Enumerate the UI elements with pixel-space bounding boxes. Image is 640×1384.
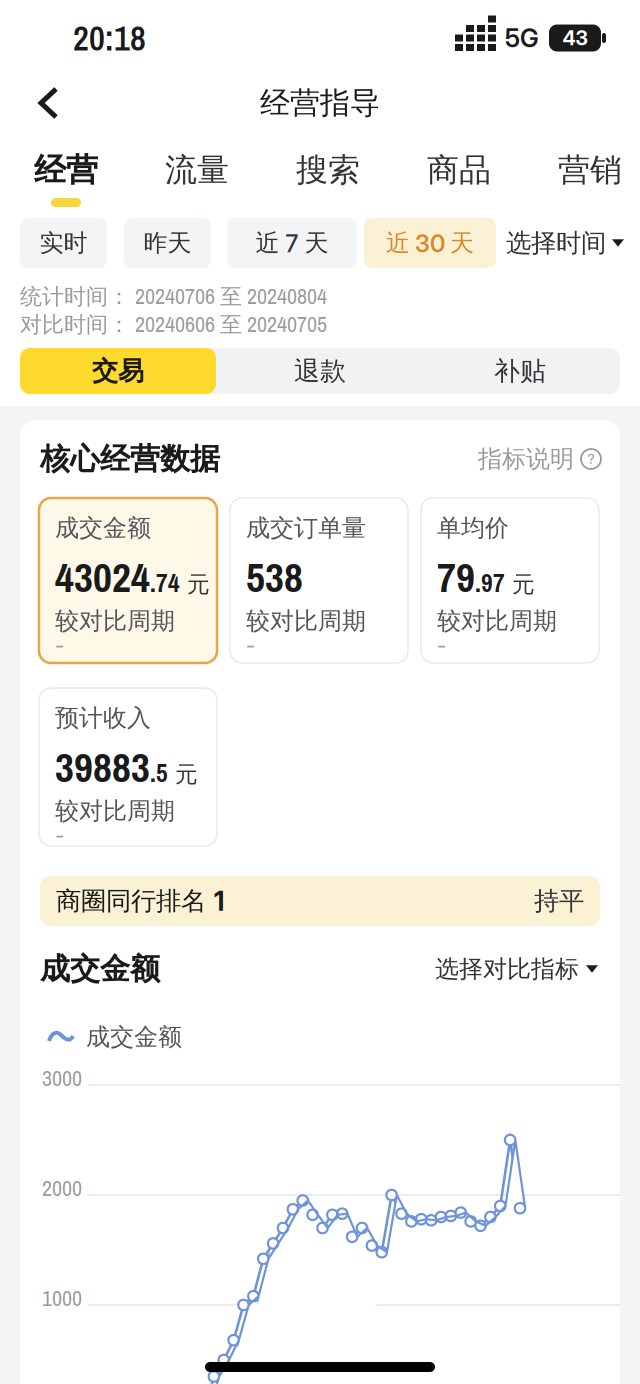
staticText: 79	[437, 549, 475, 605]
button[interactable]: 近 7 天	[227, 218, 357, 268]
staticText: 元	[505, 570, 535, 599]
staticText: -	[55, 632, 64, 658]
staticText: 5G	[505, 23, 539, 53]
staticText: .5	[150, 756, 168, 790]
staticText: 补贴	[494, 355, 546, 387]
staticText: 3000	[42, 1063, 82, 1093]
staticText: 搜索	[296, 150, 360, 190]
button[interactable]: 昨天	[124, 218, 211, 268]
staticText: 成交订单量	[246, 513, 366, 543]
staticText: 单均价	[437, 513, 509, 543]
button[interactable]: 成交金额	[40, 498, 218, 663]
button[interactable]: 近 30 天	[364, 218, 496, 268]
button[interactable]: 成交订单量	[231, 498, 409, 663]
button[interactable]: 商圈同行排名	[40, 876, 600, 926]
staticText: 营销	[558, 150, 622, 190]
staticText: 较对比周期	[437, 606, 557, 636]
staticText: 元	[168, 760, 198, 789]
staticText: 43	[562, 26, 587, 50]
staticText: .74	[150, 566, 180, 600]
staticText: -	[246, 632, 255, 658]
staticText: 538	[246, 549, 303, 605]
button[interactable]: 退款	[220, 348, 420, 394]
button[interactable]: 选择对比指标	[435, 954, 598, 984]
staticText: 经营指导	[260, 84, 380, 122]
staticText: 商品	[427, 150, 491, 190]
staticText: 选择时间	[506, 227, 606, 259]
staticText: 近 30 天	[386, 228, 474, 258]
button[interactable]: 经营	[16, 144, 116, 196]
staticText: 经营	[34, 150, 98, 190]
staticText: 昨天	[143, 228, 191, 258]
staticText: 商圈同行排名	[56, 885, 214, 917]
button[interactable]: 指标说明	[478, 444, 602, 474]
staticText: ?	[587, 451, 594, 467]
staticText: 退款	[294, 355, 346, 387]
staticText: 20:18	[73, 15, 146, 61]
staticText: 成交金额	[55, 513, 151, 543]
staticText: 统计时间： 20240706 至 20240804	[20, 281, 327, 311]
staticText: 选择对比指标	[435, 954, 579, 984]
staticText: 持平	[534, 885, 584, 917]
staticText: 成交金额	[40, 950, 160, 988]
staticText: 交易	[92, 355, 144, 387]
staticText: 43024	[55, 549, 150, 605]
staticText: 成交金额	[86, 1022, 182, 1052]
staticText: 2000	[42, 1173, 82, 1203]
button[interactable]: 预计收入	[40, 688, 218, 846]
button[interactable]: 选择时间	[506, 227, 624, 259]
staticText: 元	[180, 570, 210, 599]
staticText: 1000	[42, 1283, 82, 1313]
staticText: 较对比周期	[246, 606, 366, 636]
button[interactable]: 商品	[409, 144, 509, 196]
button[interactable]: 搜索	[278, 144, 378, 196]
staticText: 流量	[165, 150, 229, 190]
button[interactable]: 单均价	[422, 498, 600, 663]
staticText: 1	[214, 885, 224, 917]
button[interactable]: 营销	[540, 144, 640, 196]
staticText: -	[437, 632, 446, 658]
staticText: 近 7 天	[255, 228, 328, 258]
button[interactable]: 补贴	[420, 348, 620, 394]
button[interactable]: Back	[0, 87, 79, 119]
staticText: -	[55, 822, 64, 848]
staticText: .97	[475, 566, 505, 600]
staticText: 39883	[55, 739, 150, 795]
staticText: 对比时间： 20240606 至 20240705	[20, 309, 327, 339]
button[interactable]: 流量	[147, 144, 247, 196]
staticText: 指标说明	[478, 444, 574, 474]
staticText: 预计收入	[55, 703, 151, 733]
staticText: 实时	[39, 228, 87, 258]
button[interactable]: 交易	[20, 348, 216, 394]
staticText: 较对比周期	[55, 796, 175, 826]
button[interactable]: 实时	[20, 218, 107, 268]
staticText: 较对比周期	[55, 606, 175, 636]
staticText: 核心经营数据	[40, 440, 220, 478]
